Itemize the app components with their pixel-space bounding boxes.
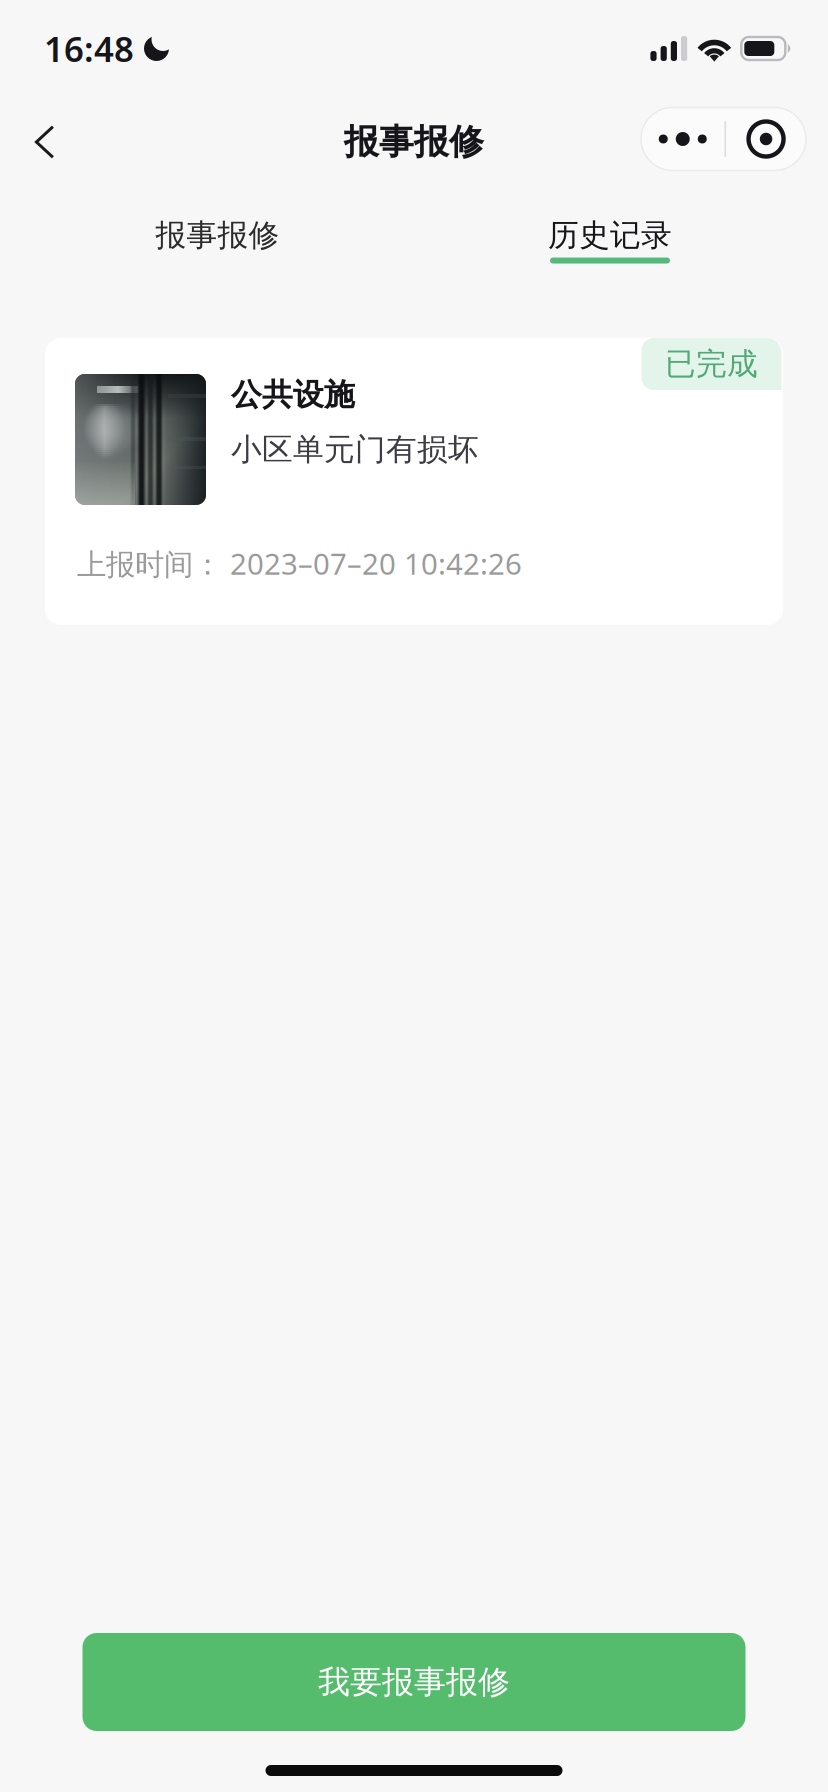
staticText: 已完成 [665, 345, 758, 383]
staticText: 我要报事报修 [318, 1662, 510, 1702]
button[interactable]: 历史记录 [490, 216, 730, 263]
staticText: 公共设施 [231, 376, 355, 414]
staticText: 历史记录 [548, 216, 672, 254]
button[interactable]: Back [11, 109, 77, 175]
staticText: 小区单元门有损坏 [231, 431, 479, 468]
button[interactable]: 我要报事报修 [82, 1633, 745, 1731]
button[interactable]: 报事报修 [97, 216, 337, 263]
button[interactable]: 公共设施 [45, 338, 783, 625]
staticText: 上报时间： 2023–07–20 10:42:26 [77, 544, 522, 583]
button[interactable]: Close mini program [726, 107, 806, 170]
button[interactable]: More options [641, 107, 724, 170]
staticText: 报事报修 [344, 121, 484, 163]
staticText: 报事报修 [155, 216, 279, 254]
staticText: 16:48 [44, 25, 134, 71]
